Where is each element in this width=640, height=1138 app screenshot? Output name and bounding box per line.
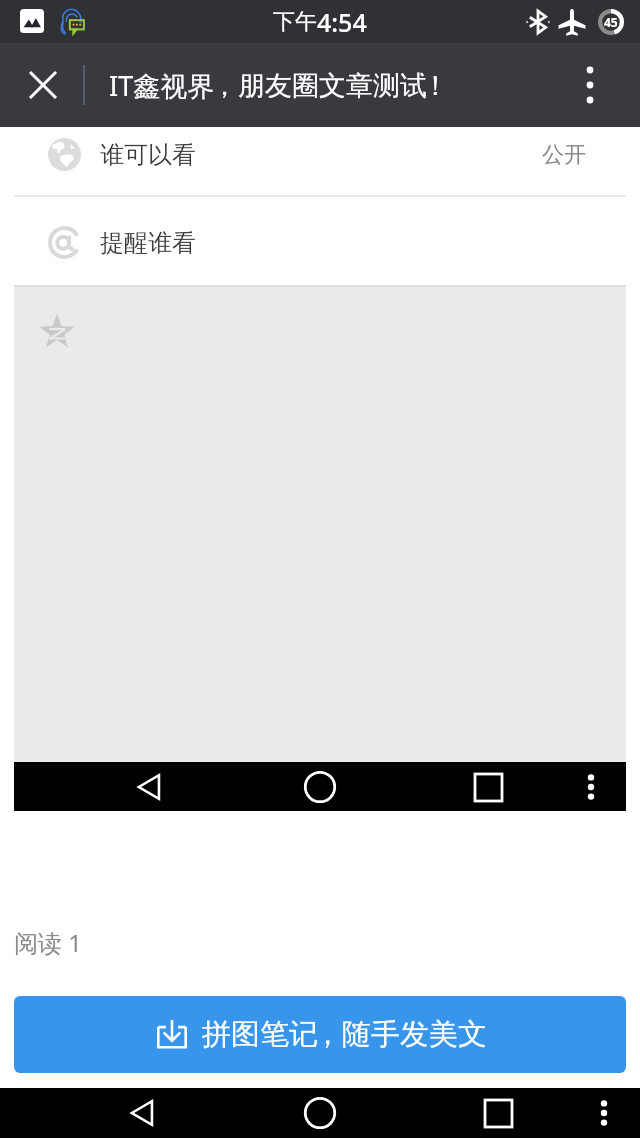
staticText: ，: [211, 69, 234, 103]
button[interactable]: Close: [1, 43, 85, 127]
button[interactable]: Recents: [464, 763, 512, 811]
staticText: 拼图笔记: [202, 1016, 318, 1053]
button[interactable]: 谁可以看: [0, 127, 640, 182]
staticText: 公开: [542, 141, 586, 169]
button[interactable]: Back: [126, 763, 174, 811]
staticText: ，: [313, 1016, 337, 1053]
staticText: 谁可以看: [100, 140, 196, 170]
button[interactable]: More: [571, 767, 611, 807]
button[interactable]: Home: [296, 763, 344, 811]
staticText: 4:54: [317, 5, 367, 39]
button[interactable]: 提醒谁看: [0, 215, 640, 270]
staticText: 提醒谁看: [100, 228, 196, 258]
button[interactable]: 拼图笔记: [14, 996, 626, 1073]
button[interactable]: Recents: [474, 1089, 522, 1137]
button[interactable]: More options: [548, 43, 632, 127]
staticText: IT鑫视界: [109, 67, 215, 104]
button[interactable]: Back: [119, 1089, 167, 1137]
staticText: 朋友圈文章测试: [238, 69, 427, 103]
staticText: 随手发美文: [342, 1016, 487, 1053]
staticText: 阅读 1: [14, 926, 82, 959]
staticText: ！: [422, 69, 438, 103]
staticText: 下午: [273, 8, 317, 36]
button[interactable]: Home: [296, 1089, 344, 1137]
staticText: 45: [604, 14, 618, 30]
button[interactable]: More: [584, 1093, 624, 1133]
